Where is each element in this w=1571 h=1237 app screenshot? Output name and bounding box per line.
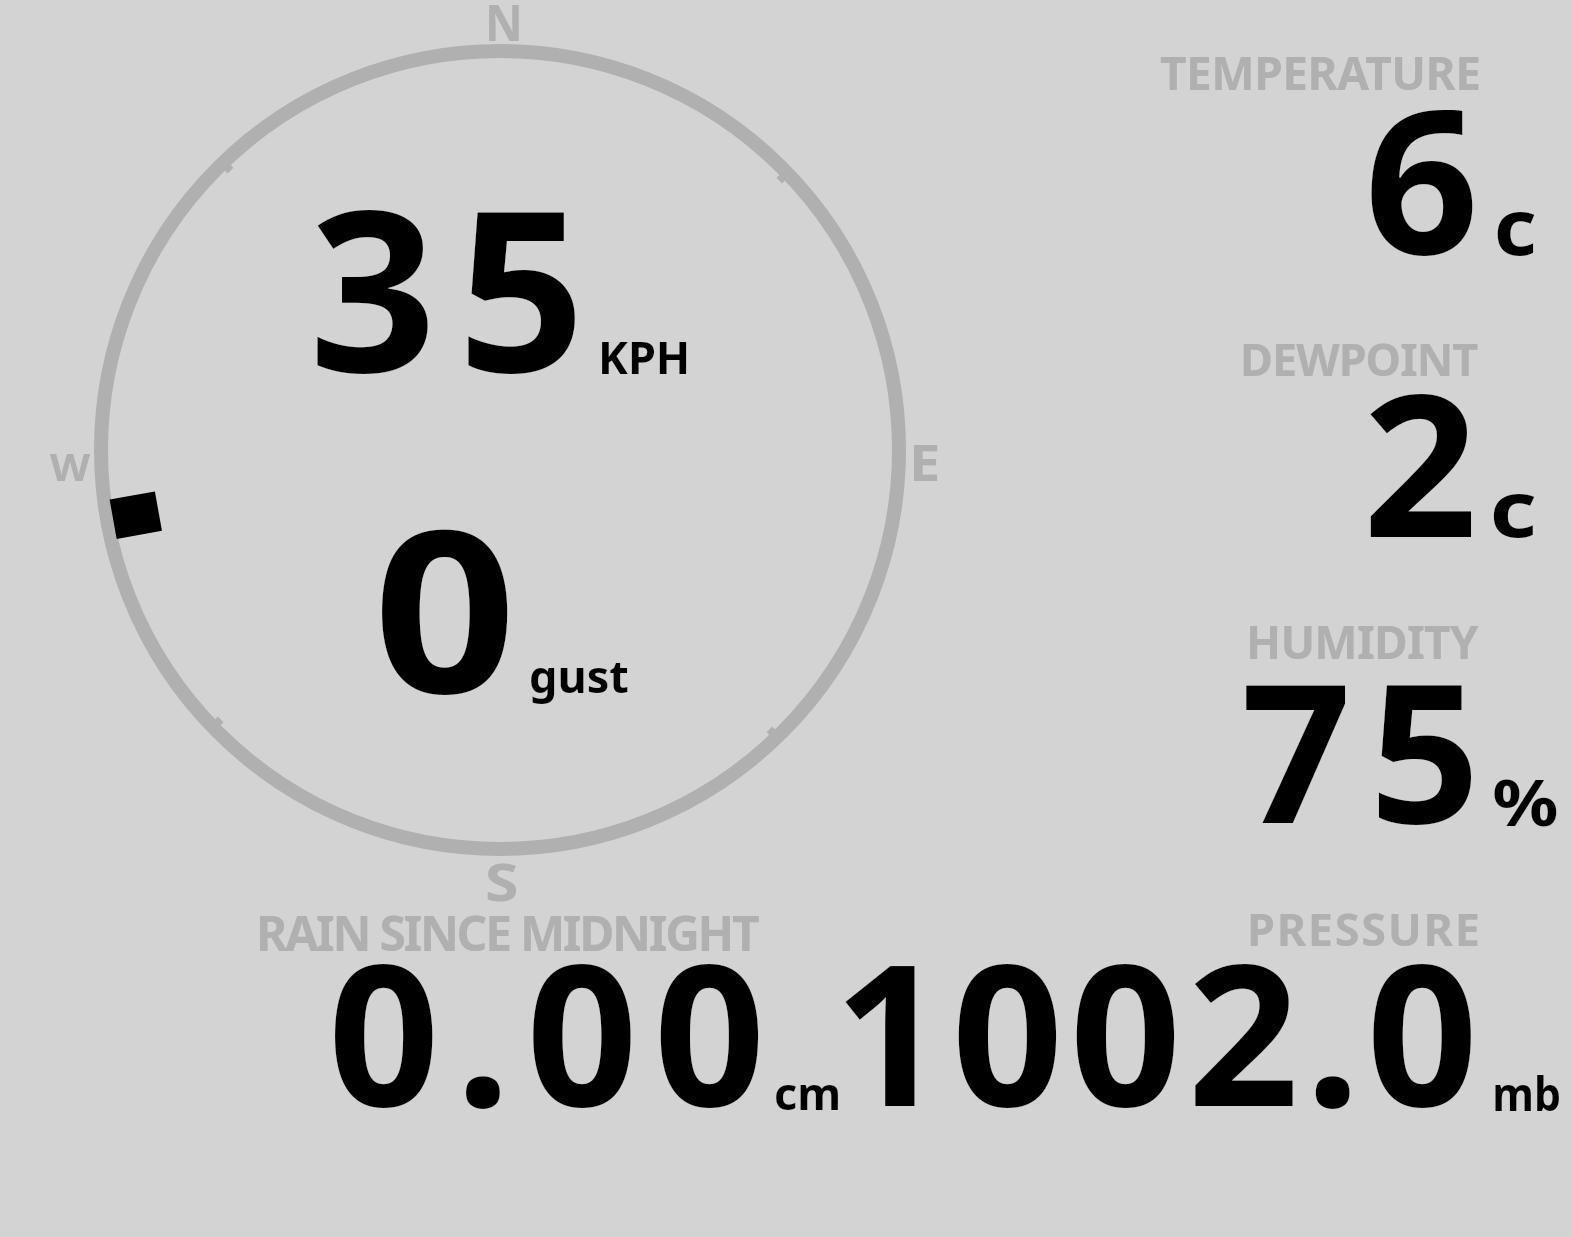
staticText: RAIN SINCE MIDNIGHT (256, 900, 758, 965)
staticText: TEMPERATURE (1160, 41, 1481, 104)
staticText: S (485, 845, 519, 916)
staticText: 0.00 (328, 898, 782, 1164)
button[interactable]: Humidity 75 percent (1020, 610, 1571, 840)
staticText: 75 (1241, 617, 1498, 880)
staticText: 35 (309, 134, 607, 438)
staticText: gust (529, 645, 629, 706)
staticText: mb (1492, 1062, 1561, 1125)
staticText: HUMIDITY (1246, 610, 1478, 673)
staticText: PRESSURE (1247, 898, 1482, 959)
staticText: 2 (1363, 326, 1478, 594)
staticText: c (1494, 173, 1537, 278)
staticText: c (1489, 455, 1537, 560)
staticText: 0 (373, 454, 517, 759)
staticText: 6 (1364, 41, 1479, 312)
button[interactable]: Temperature 6 degrees Celsius (1020, 40, 1571, 270)
button[interactable]: Wind speed 35 KPH (280, 180, 720, 400)
staticText: % (1492, 757, 1559, 846)
button[interactable]: Rain since midnight 0.00 cm (240, 900, 860, 1125)
staticText: KPH (598, 326, 691, 387)
staticText: DEWPOINT (1240, 328, 1478, 389)
button[interactable]: Pressure 1002.0 mb (862, 900, 1571, 1125)
staticText: cm (774, 1062, 842, 1123)
staticText: N (485, 0, 523, 56)
button[interactable]: Wind direction dial (101, 51, 899, 849)
button[interactable]: Dew point 2 degrees Celsius (1020, 325, 1571, 550)
staticText: W (50, 440, 90, 492)
staticText: 1002.0 (834, 898, 1485, 1164)
staticText: E (909, 428, 940, 496)
button[interactable]: Wind gust 0 (340, 505, 700, 720)
